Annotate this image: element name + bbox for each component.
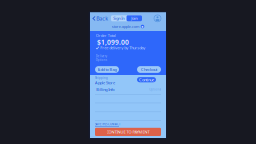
staticText: Sign In: [113, 16, 124, 21]
button[interactable]: Checkout: [137, 66, 161, 73]
staticText: Add to Bag: [97, 67, 116, 72]
button[interactable]: Sign In: [111, 15, 126, 21]
staticText: Shipping: [95, 76, 108, 80]
button[interactable]: SAVE THIS CONTACT: [95, 122, 120, 127]
button[interactable]: Back: [92, 16, 108, 21]
staticText: Order Total: [96, 33, 116, 38]
staticText: Delivery: [96, 54, 107, 58]
staticText: Back: [96, 15, 108, 22]
button[interactable]: CONTINUE TO PAYMENT: [95, 128, 161, 136]
button[interactable]: Continue: [137, 77, 156, 82]
staticText: Billing Info: [96, 87, 114, 92]
staticText: Checkout: [141, 67, 157, 72]
staticText: Optional: [149, 88, 161, 91]
button[interactable]: Account: [154, 15, 161, 22]
staticText: Join: [131, 16, 137, 21]
staticText: CONTINUE TO PAYMENT: [106, 129, 149, 134]
staticText: Free delivery by Thursday: [100, 45, 145, 50]
staticText: Apple Store: [95, 80, 115, 85]
staticText: Continue: [139, 77, 154, 82]
staticText: Options: [96, 58, 107, 62]
button[interactable]: Join: [126, 15, 142, 21]
staticText: store.apple.com: [112, 24, 140, 29]
staticText: $1,099.00: [97, 38, 129, 47]
button[interactable]: Add to Bag: [95, 66, 119, 73]
staticText: SAVE THIS CONTACT: [95, 122, 120, 126]
